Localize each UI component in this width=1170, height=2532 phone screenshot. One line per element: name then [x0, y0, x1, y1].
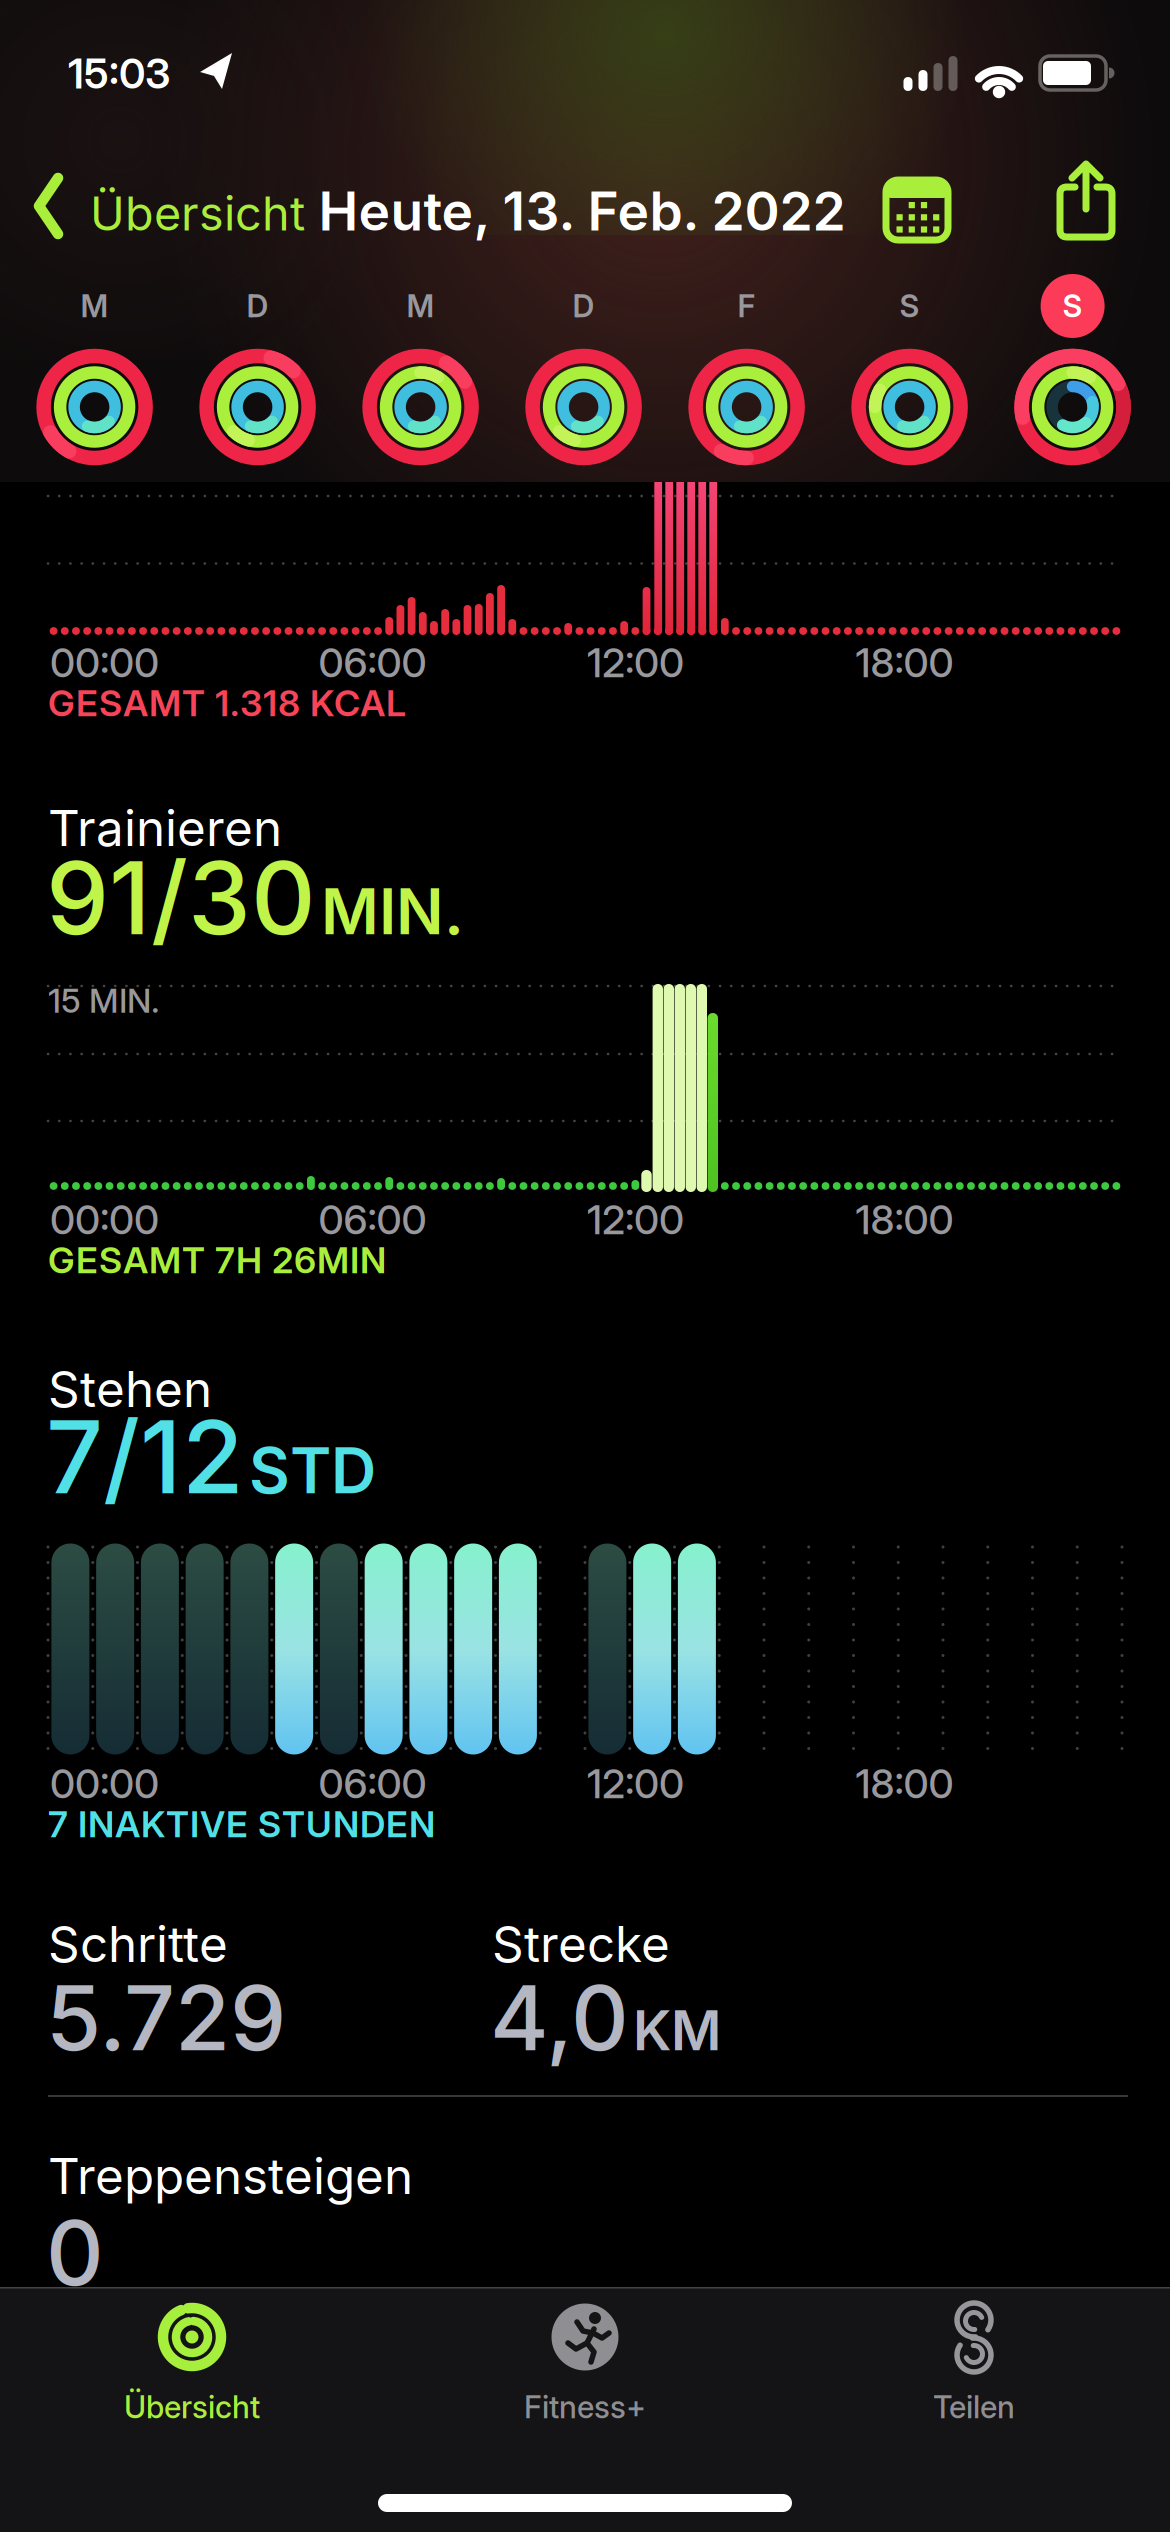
staticText: 12:00: [587, 1760, 684, 1807]
staticText: 7 INAKTIVE STUNDEN: [48, 1803, 435, 1845]
button[interactable]: Tag D: [514, 266, 654, 482]
staticText: 0: [46, 2200, 104, 2305]
staticText: D: [247, 288, 269, 324]
staticText: Teilen: [933, 2389, 1015, 2425]
staticText: M: [407, 288, 435, 324]
staticText: Heute, 13. Feb. 2022: [318, 179, 845, 242]
staticText: M: [81, 288, 109, 324]
staticText: GESAMT 7H 26MIN: [48, 1239, 386, 1281]
button[interactable]: Tag M: [25, 266, 165, 482]
staticText: D: [573, 288, 595, 324]
staticText: Treppensteigen: [48, 2147, 413, 2205]
staticText: 4,0: [490, 1965, 629, 2070]
staticText: 00:00: [50, 639, 159, 686]
staticText: 91/30: [46, 839, 316, 957]
staticText: Übersicht: [90, 186, 305, 241]
button[interactable]: Übersicht zurück: [32, 162, 322, 252]
staticText: 5.729: [46, 1965, 286, 2070]
button[interactable]: Tag S: [1003, 266, 1143, 482]
button[interactable]: Teilen: [834, 2288, 1114, 2428]
staticText: Übersicht: [124, 2389, 260, 2425]
staticText: GESAMT 1.318 KCAL: [48, 682, 406, 724]
staticText: S: [900, 288, 920, 324]
button[interactable]: Tag M: [351, 266, 491, 482]
staticText: 15 MIN.: [48, 981, 160, 1020]
staticText: 00:00: [50, 1760, 159, 1807]
staticText: Strecke: [492, 1915, 670, 1973]
staticText: KM: [633, 1998, 721, 2063]
staticText: 12:00: [587, 1196, 684, 1243]
staticText: MIN.: [321, 875, 464, 948]
button[interactable]: Fitness+: [445, 2288, 725, 2428]
staticText: Schritte: [48, 1915, 228, 1973]
staticText: 06:00: [318, 1196, 426, 1243]
button[interactable]: Tag S: [840, 266, 980, 482]
staticText: Stehen: [48, 1360, 212, 1418]
staticText: 00:00: [50, 1196, 159, 1243]
staticText: STD: [249, 1434, 376, 1507]
button[interactable]: Übersicht: [52, 2288, 332, 2428]
button[interactable]: Kalender: [879, 169, 955, 245]
staticText: 7/12: [46, 1398, 244, 1516]
staticText: S: [1063, 288, 1083, 324]
staticText: Trainieren: [48, 799, 282, 857]
button[interactable]: Teilen: [1046, 162, 1126, 246]
staticText: 18:00: [855, 1196, 953, 1243]
staticText: 15:03: [68, 49, 170, 98]
staticText: F: [738, 288, 756, 324]
staticText: 06:00: [318, 1760, 426, 1807]
staticText: 18:00: [855, 1760, 953, 1807]
staticText: Fitness+: [524, 2389, 646, 2425]
button[interactable]: Tag F: [677, 266, 817, 482]
staticText: 06:00: [318, 639, 426, 686]
staticText: 12:00: [587, 639, 684, 686]
staticText: 18:00: [855, 639, 953, 686]
button[interactable]: Tag D: [188, 266, 328, 482]
